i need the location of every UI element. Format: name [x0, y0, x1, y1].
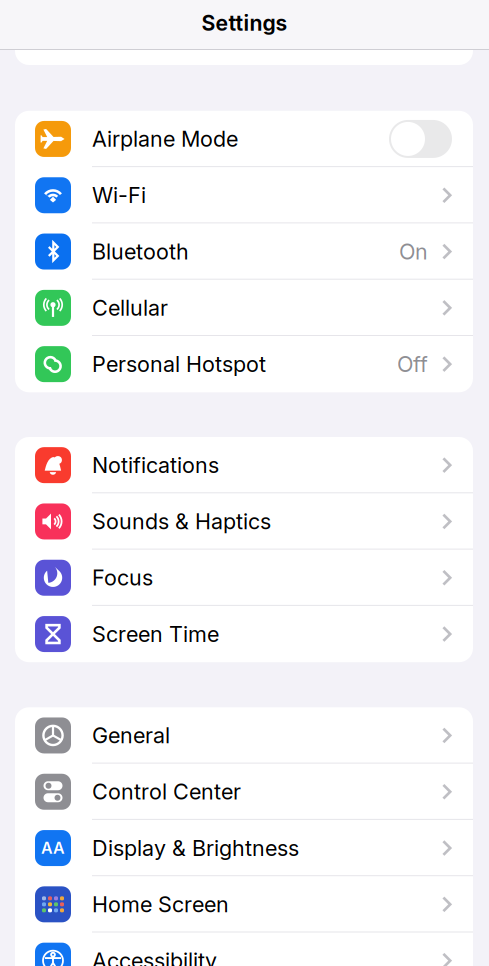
staticText: Off: [397, 351, 428, 377]
button[interactable]: Home Screen: [15, 876, 473, 932]
staticText: Screen Time: [92, 621, 219, 647]
staticText: Sounds & Haptics: [92, 508, 271, 534]
staticText: Wi-Fi: [92, 182, 146, 208]
staticText: Personal Hotspot: [92, 351, 266, 377]
button[interactable]: General: [15, 707, 473, 764]
staticText: Settings: [201, 10, 287, 36]
staticText: Focus: [92, 565, 153, 591]
staticText: Home Screen: [92, 891, 229, 917]
staticText: General: [92, 722, 170, 748]
staticText: Notifications: [92, 452, 219, 478]
button[interactable]: Focus: [15, 550, 473, 606]
button[interactable]: Notifications: [15, 437, 473, 493]
button[interactable]: Wi-Fi: [15, 167, 473, 223]
button[interactable]: AA: [15, 820, 473, 876]
button[interactable]: Personal Hotspot: [15, 336, 473, 392]
button[interactable]: Bluetooth: [15, 223, 473, 280]
staticText: Accessibility: [92, 948, 217, 966]
staticText: Display & Brightness: [92, 835, 299, 861]
button[interactable]: Screen Time: [15, 606, 473, 662]
button[interactable]: Control Center: [15, 764, 473, 820]
staticText: AA: [41, 838, 65, 858]
staticText: On: [399, 238, 428, 265]
button[interactable]: Sounds & Haptics: [15, 493, 473, 550]
staticText: Cellular: [92, 295, 168, 321]
button[interactable]: Airplane Mode: [15, 111, 473, 167]
staticText: Airplane Mode: [92, 126, 238, 152]
button[interactable]: Accessibility: [15, 932, 473, 966]
staticText: Control Center: [92, 779, 241, 805]
button[interactable]: Cellular: [15, 280, 473, 336]
staticText: Bluetooth: [92, 238, 189, 265]
